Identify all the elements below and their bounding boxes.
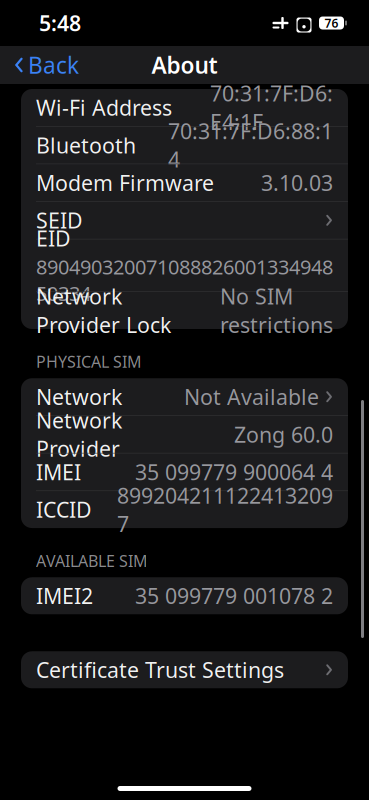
staticText: PHYSICAL SIM: [36, 351, 142, 372]
staticText: IMEI: [36, 458, 81, 486]
staticText: Certificate Trust Settings: [36, 656, 284, 684]
staticText: Modem Firmware: [36, 168, 214, 197]
button[interactable]: SEID: [21, 202, 348, 239]
staticText: 8992042111224132097: [117, 481, 333, 538]
staticText: Zong 60.0: [234, 420, 333, 448]
staticText: EID: [36, 224, 71, 252]
staticText: 89049032007108882600133494850334: [36, 253, 333, 307]
staticText: Network Provider Lock: [36, 282, 171, 339]
staticText: Network Provider: [36, 406, 122, 463]
staticText: Network: [36, 383, 122, 411]
staticText: IMEI2: [36, 582, 93, 610]
staticText: SEID: [36, 206, 83, 234]
staticText: 70:31:7F:D6:88:14: [168, 117, 333, 173]
staticText: Not Available: [184, 383, 319, 411]
staticText: 35 099779 900064 4: [135, 458, 333, 486]
staticText: 5:48: [39, 9, 81, 37]
staticText: Back: [28, 50, 79, 80]
button[interactable]: Network: [21, 378, 348, 415]
button[interactable]: Certificate Trust Settings: [21, 651, 348, 688]
staticText: 70:31:7F:D6:E4:1F: [210, 79, 333, 136]
button[interactable]: Back: [4, 44, 89, 86]
staticText: 76: [324, 15, 338, 31]
staticText: AVAILABLE SIM: [36, 550, 148, 571]
staticText: No SIM restrictions: [220, 282, 333, 339]
staticText: Bluetooth: [36, 131, 136, 159]
staticText: 3.10.03: [261, 168, 333, 197]
staticText: About: [151, 50, 217, 80]
staticText: Wi-Fi Address: [36, 93, 172, 122]
staticText: 35 099779 001078 2: [135, 582, 333, 610]
staticText: ICCID: [36, 495, 92, 524]
